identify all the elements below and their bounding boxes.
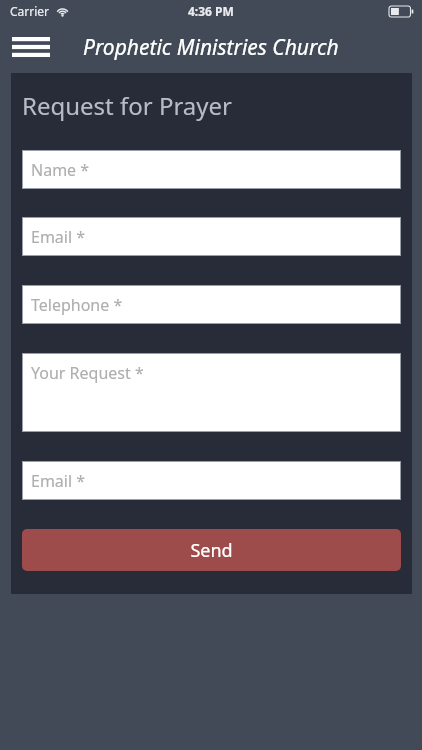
button[interactable]: Your Request * <box>22 353 401 432</box>
staticText: Your Request * <box>31 362 144 384</box>
staticText: Request for Prayer <box>22 89 233 122</box>
staticText: Email * <box>31 226 86 248</box>
button[interactable]: Name * <box>22 150 401 189</box>
button[interactable]: Open navigation menu <box>6 22 56 72</box>
staticText: 4:36 PM <box>188 3 234 19</box>
staticText: Send <box>190 538 233 563</box>
button[interactable]: Telephone * <box>22 285 401 324</box>
button[interactable]: Email * <box>22 217 401 256</box>
button[interactable]: Email * <box>22 461 401 500</box>
staticText: Name * <box>31 159 90 181</box>
staticText: Prophetic Ministries Church <box>83 33 339 62</box>
staticText: Telephone * <box>31 294 123 316</box>
button[interactable]: Send <box>22 529 401 571</box>
staticText: Email * <box>31 470 86 492</box>
staticText: Carrier <box>10 3 50 19</box>
